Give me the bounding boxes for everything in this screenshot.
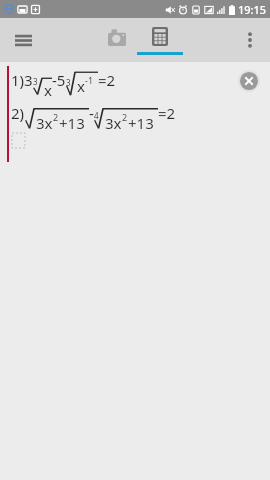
staticText: x: [77, 76, 85, 96]
button[interactable]: Camera: [96, 18, 138, 62]
staticText: =2: [98, 70, 116, 90]
button[interactable]: Close: [238, 70, 260, 92]
staticText: 19:15: [238, 2, 267, 17]
staticText: 2: [122, 111, 128, 123]
button[interactable]: Menu: [4, 21, 42, 59]
staticText: 3x: [105, 113, 122, 133]
staticText: +13: [59, 113, 85, 133]
staticText: 2): [11, 103, 25, 123]
staticText: x: [44, 80, 52, 100]
button[interactable]: More options: [233, 23, 267, 57]
staticText: 2: [53, 111, 59, 123]
staticText: 1)3: [11, 70, 33, 90]
staticText: -1: [85, 74, 94, 86]
staticText: -: [89, 103, 94, 123]
staticText: +13: [128, 113, 154, 133]
staticText: =2: [158, 103, 176, 123]
staticText: 3: [66, 77, 71, 88]
staticText: 3x: [36, 113, 53, 133]
button[interactable]: Calculator: [139, 18, 181, 62]
staticText: 3: [33, 76, 38, 87]
staticText: 4: [94, 110, 99, 121]
staticText: -5: [52, 70, 66, 90]
